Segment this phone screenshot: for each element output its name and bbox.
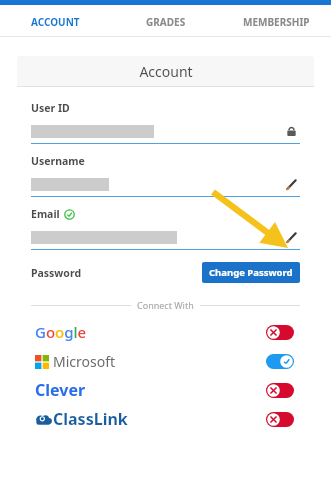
staticText: Account: [139, 62, 193, 81]
staticText: Change Password: [209, 266, 293, 279]
button[interactable]: Locked: [282, 122, 300, 140]
staticText: Password: [31, 266, 82, 280]
staticText: User ID: [31, 101, 70, 115]
staticText: ClassLink: [53, 408, 128, 430]
button[interactable]: Clever: [31, 379, 300, 401]
button[interactable]: Edit username: [282, 175, 300, 193]
button[interactable]: ClassLink: [31, 408, 300, 430]
button[interactable]: Change Password: [202, 262, 300, 283]
button[interactable]: Toggle Clever connection: [266, 383, 294, 398]
button[interactable]: Toggle ClassLink connection: [266, 412, 294, 427]
button[interactable]: ACCOUNT: [0, 5, 111, 36]
staticText: GRADES: [146, 15, 186, 29]
button[interactable]: Edit email: [282, 228, 300, 246]
staticText: Email: [31, 207, 60, 221]
button[interactable]: MEMBERSHIP: [221, 5, 331, 36]
button[interactable]: Toggle Microsoft connection: [266, 354, 294, 369]
staticText: Clever: [35, 379, 86, 401]
staticText: MEMBERSHIP: [243, 15, 310, 29]
staticText: Username: [31, 154, 85, 168]
staticText: Google: [35, 322, 87, 342]
staticText: ACCOUNT: [31, 15, 80, 29]
button[interactable]: GRADES: [111, 5, 221, 36]
staticText: Connect With: [137, 299, 194, 311]
staticText: Microsoft: [53, 352, 116, 371]
button[interactable]: Microsoft: [31, 350, 300, 372]
button[interactable]: Toggle Google connection: [266, 325, 294, 340]
button[interactable]: Google: [31, 321, 300, 343]
